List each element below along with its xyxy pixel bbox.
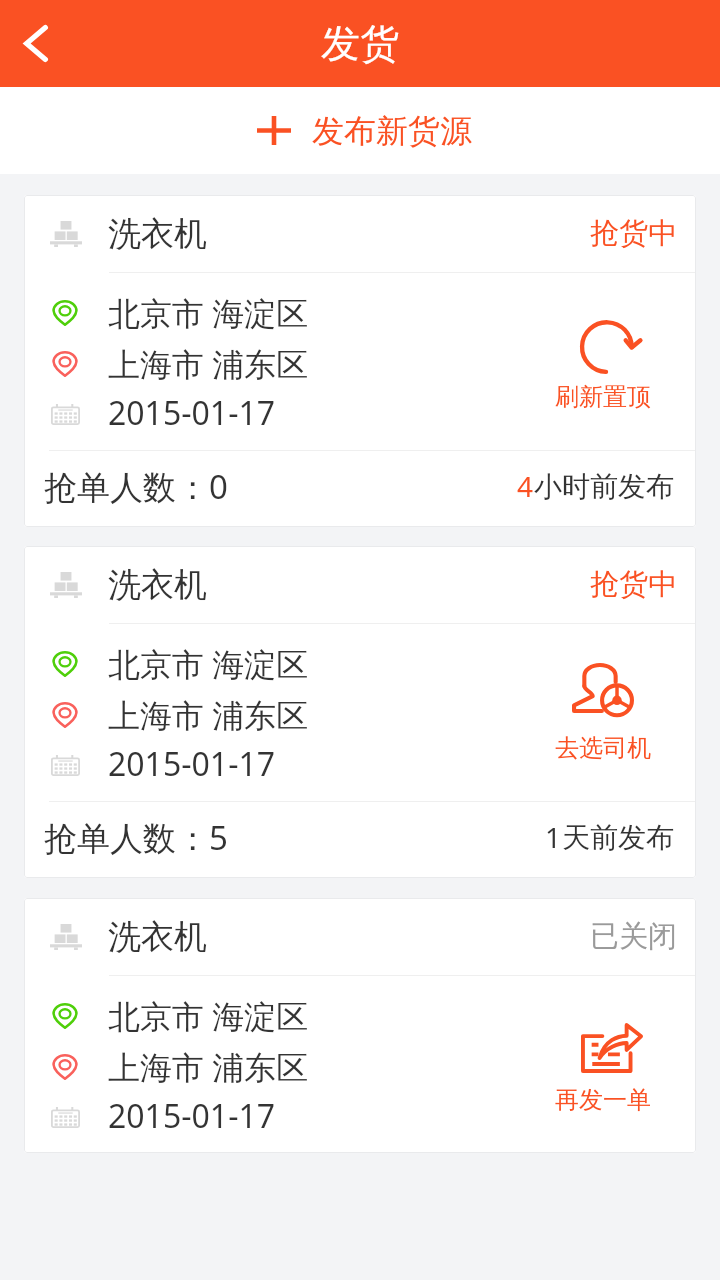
staticText: 再发一单 xyxy=(555,1085,651,1115)
staticText: 2015-01-17 xyxy=(108,391,276,435)
staticText: 上海市 浦东区 xyxy=(108,693,309,737)
staticText: 1 xyxy=(545,818,562,856)
staticText: 发货 xyxy=(321,19,399,68)
staticText: 洗衣机 xyxy=(108,916,207,958)
button[interactable]: 再发一单 xyxy=(541,1008,665,1121)
staticText: 天前发布 xyxy=(562,820,674,855)
staticText: 洗衣机 xyxy=(108,564,207,606)
staticText: 抢货中 xyxy=(590,215,677,252)
button[interactable]: 洗衣机 xyxy=(24,898,696,1153)
staticText: 2015-01-17 xyxy=(108,1094,276,1138)
staticText: 北京市 海淀区 xyxy=(108,291,309,335)
staticText: 抢单人数：5 xyxy=(44,815,228,860)
staticText: 北京市 海淀区 xyxy=(108,642,309,686)
staticText: 2015-01-17 xyxy=(108,742,276,786)
button[interactable]: Back xyxy=(0,0,72,87)
staticText: 刷新置顶 xyxy=(555,382,651,412)
staticText: 已关闭 xyxy=(590,918,677,955)
staticText: 上海市 浦东区 xyxy=(108,342,309,386)
staticText: 上海市 浦东区 xyxy=(108,1045,309,1089)
staticText: 北京市 海淀区 xyxy=(108,994,309,1038)
staticText: 4 xyxy=(517,467,534,505)
staticText: 去选司机 xyxy=(555,733,651,763)
staticText: 抢货中 xyxy=(590,566,677,603)
staticText: 小时前发布 xyxy=(534,469,674,504)
staticText: 抢单人数：0 xyxy=(44,464,228,509)
button[interactable]: 发布新货源 xyxy=(0,87,720,174)
button[interactable]: 去选司机 xyxy=(541,656,665,769)
button[interactable]: 刷新置顶 xyxy=(541,305,665,418)
button[interactable]: 洗衣机 xyxy=(24,546,696,878)
staticText: 发布新货源 xyxy=(312,111,472,151)
staticText: 洗衣机 xyxy=(108,213,207,255)
button[interactable]: 洗衣机 xyxy=(24,195,696,527)
